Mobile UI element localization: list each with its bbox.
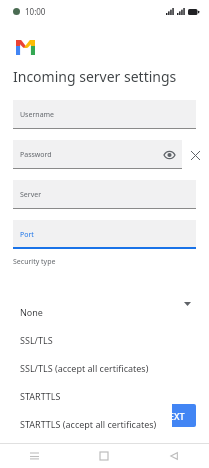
button[interactable]: Recent apps — [0, 444, 69, 468]
button[interactable]: Password — [13, 140, 182, 169]
button[interactable]: Open security type dropdown — [182, 299, 192, 309]
staticText: Server — [20, 190, 42, 200]
staticText: 10:00 — [25, 6, 46, 17]
staticText: NEXT — [162, 410, 185, 422]
button[interactable]: Port — [13, 220, 196, 249]
staticText: Incoming server settings — [13, 67, 177, 86]
staticText: STARTTLS (accept all certificates) — [20, 418, 157, 430]
button[interactable]: SSL/TLS — [8, 326, 172, 354]
button[interactable]: STARTTLS — [8, 382, 172, 410]
button[interactable]: None — [8, 298, 172, 326]
staticText: Password — [20, 150, 52, 160]
staticText: SSL/TLS (accept all certificates) — [20, 362, 149, 374]
button[interactable]: Server — [13, 180, 196, 209]
staticText: STARTTLS — [20, 390, 61, 402]
button[interactable]: Home — [69, 444, 139, 468]
staticText: Security type — [13, 257, 56, 267]
staticText: None — [20, 306, 43, 318]
button[interactable]: Username — [13, 100, 196, 129]
staticText: Username — [20, 110, 55, 120]
button[interactable]: NEXT — [150, 404, 196, 427]
staticText: SSL/TLS — [20, 334, 53, 346]
button[interactable]: Back — [139, 444, 209, 468]
button[interactable]: SSL/TLS (accept all certificates) — [8, 354, 172, 382]
button[interactable]: Show password — [162, 148, 176, 162]
staticText: Port — [20, 230, 34, 240]
button[interactable]: Clear password — [186, 146, 204, 164]
button[interactable]: STARTTLS (accept all certificates) — [8, 410, 172, 438]
